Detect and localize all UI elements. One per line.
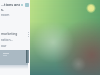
staticText: our xyxy=(1,43,7,47)
staticText: marketing xyxy=(1,31,18,35)
staticText: s. xyxy=(1,7,4,12)
staticText: …tions and xyxy=(1,2,20,7)
staticText: room xyxy=(1,12,10,16)
staticText: ration… xyxy=(1,37,14,41)
